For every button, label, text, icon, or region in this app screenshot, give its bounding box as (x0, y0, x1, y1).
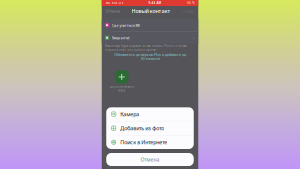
button[interactable]: Добавить из фото (106, 121, 194, 135)
staticText: Отмена (140, 156, 159, 163)
staticText: на устройствах с этой учётной записью (105, 48, 156, 51)
button[interactable]: Где учиться 88 (102, 19, 198, 31)
staticText: Новый контакт (131, 7, 170, 15)
staticText: Добавить из фото (120, 125, 164, 132)
button[interactable]: Отмена (106, 153, 194, 166)
staticText: МТС RUS LTE (106, 1, 123, 5)
staticText: Дополнительное (110, 85, 134, 88)
staticText: Ваш номер будет сохранён только на этом … (105, 44, 187, 48)
button[interactable]: Готово (181, 7, 195, 15)
staticText: Обновитесь до версии Plus и добавьте до (114, 52, 186, 57)
staticText: 66 % (187, 1, 194, 5)
button[interactable]: Добавить (110, 70, 134, 92)
button[interactable]: Камера (106, 107, 194, 121)
button[interactable]: Отмена (105, 7, 121, 15)
staticText: Камера (120, 111, 139, 118)
staticText: 30 записей (140, 56, 159, 61)
staticText: Вход (118, 89, 125, 92)
staticText: Поиск в Интернете (120, 139, 167, 146)
staticText: › (193, 34, 195, 41)
staticText: Закрытое (111, 35, 129, 40)
staticText: Отмена (106, 8, 120, 14)
staticText: Готово (182, 8, 194, 14)
button[interactable]: Поиск в Интернете (106, 135, 194, 149)
staticText: Где учиться 88 (111, 22, 139, 28)
staticText: 9:44 AM (148, 1, 161, 5)
button[interactable]: Закрытое (102, 32, 198, 44)
